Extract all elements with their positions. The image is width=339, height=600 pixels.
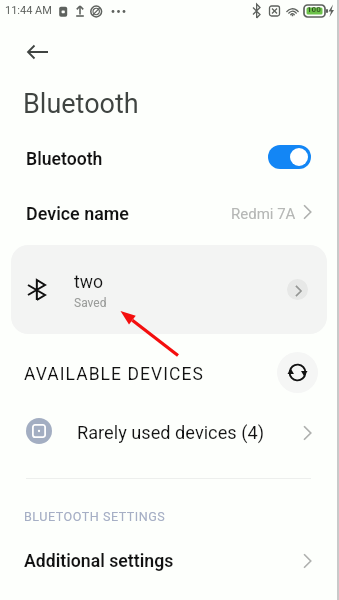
staticText: two	[74, 272, 104, 293]
staticText: 11:44 AM	[5, 4, 52, 17]
button[interactable]: Refresh	[277, 352, 318, 393]
staticText: AVAILABLE DEVICES	[24, 364, 204, 385]
button[interactable]: Rarely used devices (4)	[0, 405, 339, 453]
staticText: Redmi 7A	[231, 205, 296, 223]
staticText: BLUETOOTH SETTINGS	[24, 509, 166, 524]
staticText: Bluetooth	[23, 88, 139, 120]
button[interactable]: Bluetooth toggle	[268, 145, 311, 169]
staticText: Bluetooth	[26, 149, 103, 170]
button[interactable]: two	[11, 245, 327, 334]
staticText: 100	[307, 5, 321, 14]
button[interactable]: Bluetooth	[0, 134, 339, 180]
button[interactable]: Back	[22, 36, 54, 68]
staticText: Rarely used devices (4)	[77, 422, 264, 443]
button[interactable]: Device settings	[287, 279, 308, 300]
button[interactable]: Additional settings	[0, 538, 339, 582]
button[interactable]: Device name	[0, 189, 339, 234]
staticText: Additional settings	[24, 551, 174, 572]
staticText: Saved	[74, 296, 107, 310]
staticText: Device name	[26, 203, 129, 224]
